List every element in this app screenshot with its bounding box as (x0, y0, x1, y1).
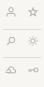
button[interactable]: iCloud (0, 58, 22, 86)
button[interactable]: Passwords (22, 58, 44, 86)
button[interactable]: Account (0, 0, 22, 29)
button[interactable]: Search (0, 30, 22, 57)
button[interactable]: Appearance (22, 30, 44, 57)
button[interactable]: Favourites (22, 0, 44, 29)
